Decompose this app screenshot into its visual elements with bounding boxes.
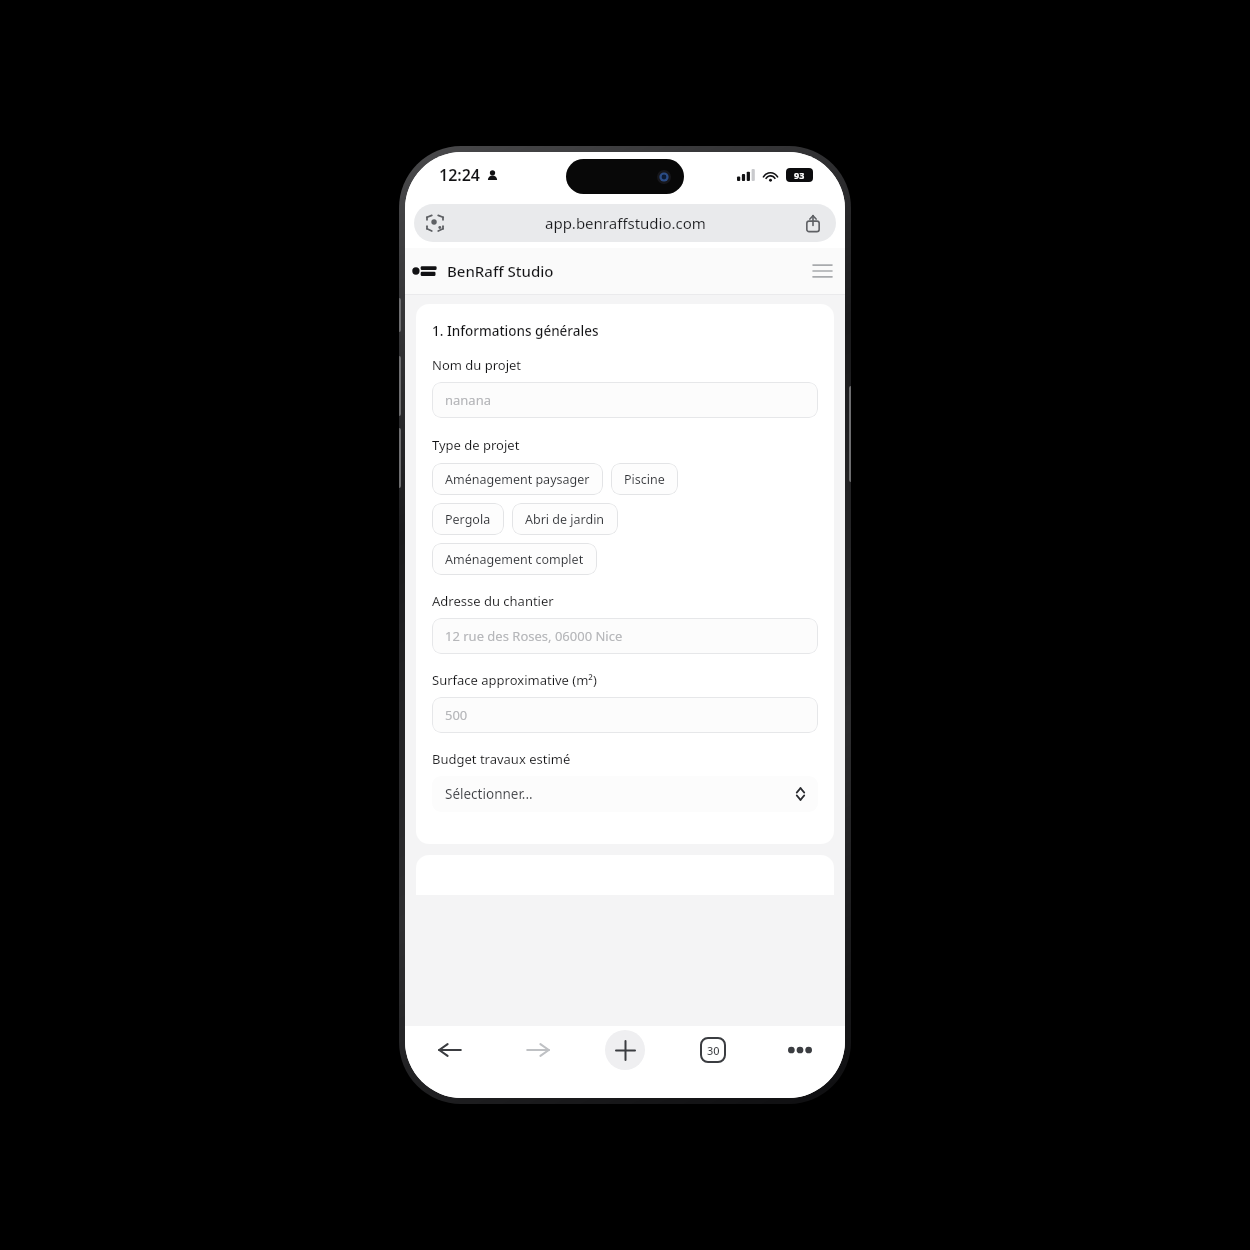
- staticText: Adresse du chantier: [432, 592, 554, 610]
- button[interactable]: nanana: [432, 382, 818, 418]
- staticText: 30: [707, 1043, 720, 1058]
- button[interactable]: Back: [423, 1026, 477, 1074]
- button[interactable]: Pergola: [432, 503, 504, 535]
- staticText: 12:24: [439, 164, 481, 186]
- button[interactable]: Forward: [511, 1026, 565, 1074]
- button[interactable]: Sélectionner...: [432, 776, 818, 812]
- staticText: Surface approximative (m²): [432, 671, 597, 689]
- staticText: Budget travaux estimé: [432, 750, 571, 768]
- staticText: Nom du projet: [432, 356, 522, 374]
- button[interactable]: Tabs: [686, 1026, 740, 1074]
- button[interactable]: 500: [432, 697, 818, 733]
- button[interactable]: Menu: [807, 256, 837, 286]
- button[interactable]: Share: [800, 210, 826, 236]
- staticText: nanana: [445, 391, 491, 409]
- staticText: Aménagement complet: [445, 551, 584, 568]
- staticText: BenRaff Studio: [447, 261, 554, 281]
- staticText: Type de projet: [432, 436, 520, 454]
- staticText: 500: [445, 706, 468, 724]
- button[interactable]: Abri de jardin: [512, 503, 618, 535]
- button[interactable]: Piscine: [611, 463, 678, 495]
- button[interactable]: More: [773, 1026, 827, 1074]
- staticText: 12 rue des Roses, 06000 Nice: [445, 627, 623, 645]
- staticText: Abri de jardin: [525, 511, 605, 528]
- button[interactable]: app.benraffstudio.com: [414, 204, 836, 242]
- staticText: Sélectionner...: [445, 785, 533, 803]
- staticText: app.benraffstudio.com: [545, 213, 706, 233]
- button[interactable]: Aménagement paysager: [432, 463, 603, 495]
- button[interactable]: Aménagement complet: [432, 543, 597, 575]
- staticText: Pergola: [445, 511, 491, 528]
- button[interactable]: BenRaff Studio: [412, 261, 554, 281]
- staticText: 93: [794, 169, 805, 181]
- button[interactable]: 12 rue des Roses, 06000 Nice: [432, 618, 818, 654]
- button[interactable]: New tab: [598, 1026, 652, 1074]
- button[interactable]: Page actions: [422, 210, 448, 236]
- staticText: Aménagement paysager: [445, 471, 590, 488]
- staticText: 1. Informations générales: [432, 322, 599, 340]
- staticText: Piscine: [624, 471, 665, 488]
